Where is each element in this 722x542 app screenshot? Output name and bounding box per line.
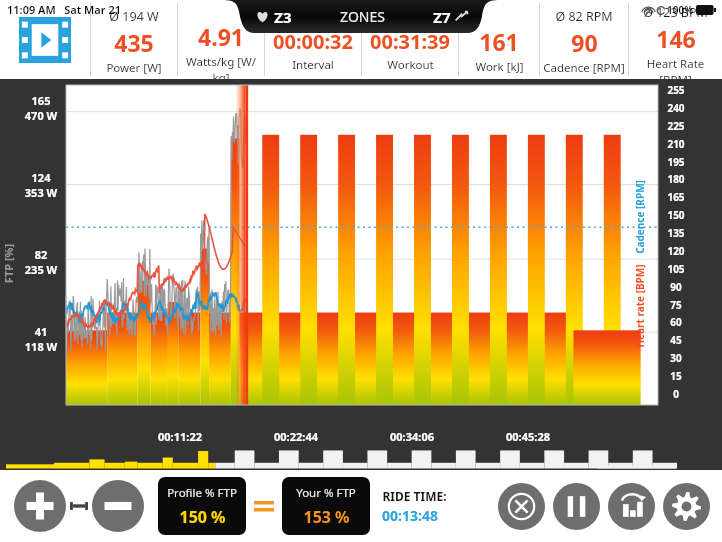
staticText: 195 (664, 155, 688, 169)
button[interactable]: Ø 123 BPM (629, 0, 722, 79)
staticText: 118 W (20, 339, 62, 354)
staticText: 225 (664, 119, 688, 133)
staticText: 470 W (20, 108, 62, 123)
staticText: Watts/kg [W/kg] (178, 54, 264, 79)
button[interactable]: Video (0, 0, 90, 79)
staticText: 120 (664, 244, 688, 258)
staticText: 00:45:28 (506, 429, 550, 444)
staticText: Z7 (433, 7, 451, 27)
button[interactable]: Profile % FTP (158, 477, 246, 535)
staticText: 00:31:39 (370, 28, 450, 55)
staticText: 105 (664, 262, 688, 276)
staticText: Interval (292, 57, 334, 73)
button[interactable]: RIDE TIME: (382, 488, 447, 525)
button[interactable]: 4.91 (178, 0, 264, 79)
staticText: 15 (664, 369, 688, 383)
staticText: Ø 82 RPM (555, 8, 613, 25)
button[interactable]: 00:31:39 (362, 0, 458, 79)
button[interactable]: Pause (553, 483, 600, 530)
staticText: 75 (664, 298, 688, 312)
staticText: 161 (479, 26, 519, 57)
button[interactable]: 161 (459, 0, 539, 79)
staticText: 235 W (20, 262, 62, 277)
staticText: 124 (20, 170, 62, 185)
staticText: 00:13:48 (382, 506, 438, 525)
button[interactable]: Ø 194 W (91, 0, 177, 79)
staticText: 165 (20, 93, 62, 108)
staticText: 90 (571, 27, 598, 58)
staticText: Work [kJ] (475, 59, 524, 75)
staticText: 00:34:06 (390, 429, 434, 444)
staticText: Your % FTP (296, 485, 356, 501)
button[interactable]: 00:00:32 (265, 0, 361, 79)
staticText: 165 (664, 190, 688, 204)
staticText: 150 (664, 208, 688, 222)
button[interactable]: Increase (14, 480, 66, 532)
button[interactable]: Ø 82 RPM (540, 0, 628, 79)
staticText: 41 (20, 324, 62, 339)
staticText: Cadence [RPM] (543, 60, 625, 76)
button[interactable]: Settings (663, 483, 710, 530)
staticText: 150 % (179, 506, 226, 528)
staticText: / (633, 254, 647, 264)
staticText: 4.91 (198, 21, 244, 52)
staticText: 353 W (20, 185, 62, 200)
staticText: 100% (667, 3, 693, 17)
staticText: Ø 123 BPM (643, 4, 708, 21)
staticText: 0 (664, 387, 688, 401)
staticText: 82 (20, 247, 62, 262)
staticText: Cadence [RPM] (633, 180, 647, 254)
staticText: Power [W] (106, 60, 162, 76)
staticText: 11:09 AM Sat Mar 21 (7, 2, 121, 17)
staticText: 30 (664, 351, 688, 365)
staticText: Heart Rate [BPM] (629, 56, 722, 79)
staticText: 00:22:44 (274, 429, 318, 444)
staticText: 240 (664, 101, 688, 115)
staticText: Ø 194 W (109, 8, 159, 25)
staticText: Workout (387, 57, 434, 73)
staticText: ZONES (340, 7, 385, 26)
staticText: RIDE TIME: (382, 488, 447, 504)
staticText: FTP [%] (0, 243, 15, 283)
staticText: 45 (664, 333, 688, 347)
staticText: 90 (664, 280, 688, 294)
staticText: 255 (664, 83, 688, 97)
staticText: Heart rate [BPM] (633, 264, 647, 348)
staticText: 146 (656, 23, 696, 54)
staticText: 00:00:32 (273, 28, 353, 55)
button[interactable]: Your % FTP (282, 477, 370, 535)
staticText: 153 % (303, 506, 350, 528)
staticText: 180 (664, 172, 688, 186)
staticText: 00:11:22 (158, 429, 202, 444)
button[interactable]: Restart interval (608, 483, 655, 530)
staticText: 435 (114, 27, 154, 58)
button[interactable]: Stop (498, 483, 545, 530)
staticText: 135 (664, 226, 688, 240)
button[interactable]: Decrease (92, 480, 144, 532)
staticText: Z3 (274, 7, 292, 27)
staticText: 210 (664, 137, 688, 151)
staticText: 60 (664, 315, 688, 329)
staticText: Profile % FTP (167, 485, 237, 501)
